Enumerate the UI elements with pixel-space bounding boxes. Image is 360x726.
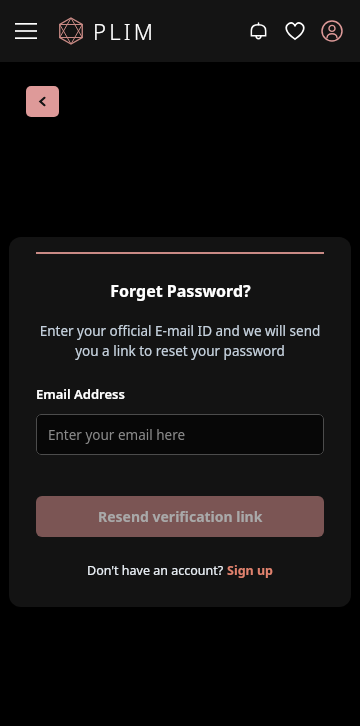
button[interactable]: Resend verification link	[36, 496, 324, 537]
staticText: Sign up	[227, 562, 273, 579]
button[interactable]: Notifications	[242, 15, 274, 47]
button[interactable]: Sign up	[227, 562, 273, 579]
button[interactable]: Enter your email here	[36, 414, 324, 455]
staticText: Email Address	[36, 385, 125, 403]
button[interactable]: Favorites	[279, 15, 311, 47]
staticText: PLIM	[93, 16, 157, 46]
staticText: Forget Password?	[110, 280, 251, 302]
button[interactable]: Back	[26, 86, 59, 117]
button[interactable]: Account	[316, 15, 348, 47]
staticText: Enter your official E-mail ID and we wil…	[36, 322, 324, 360]
staticText: Resend verification link	[98, 507, 263, 526]
button[interactable]: Menu	[13, 18, 39, 44]
staticText: Enter your email here	[48, 426, 186, 444]
staticText: Don't have an account?	[87, 562, 227, 579]
